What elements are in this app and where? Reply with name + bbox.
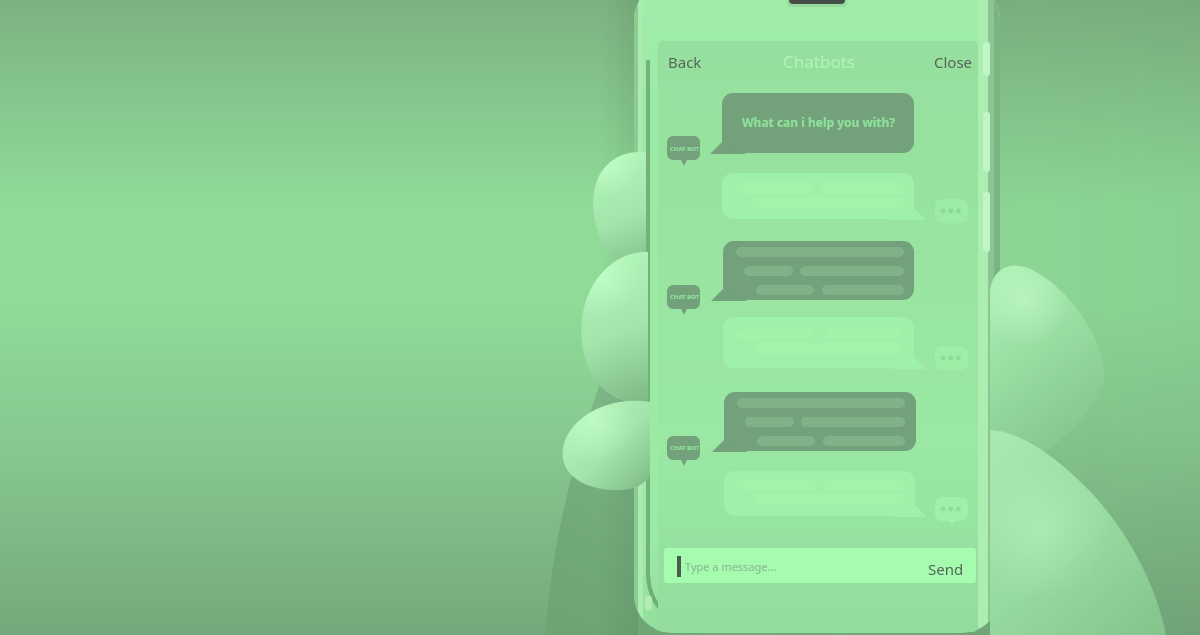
staticText: CHAT BOT [670,444,700,452]
staticText: CHAT BOT [670,293,700,301]
staticText: Close [934,52,973,72]
staticText: What can i help you with? [742,114,896,130]
button[interactable]: Close [926,46,981,78]
staticText: Chatbots [783,50,855,73]
button[interactable]: Send message [921,553,971,585]
button[interactable]: Back [660,46,710,78]
staticText: CHAT BOT [670,145,700,153]
staticText: Send [928,559,964,579]
button[interactable]: Chatbots [779,45,859,78]
staticText: Type a message... [685,559,777,574]
staticText: Back [668,52,702,72]
